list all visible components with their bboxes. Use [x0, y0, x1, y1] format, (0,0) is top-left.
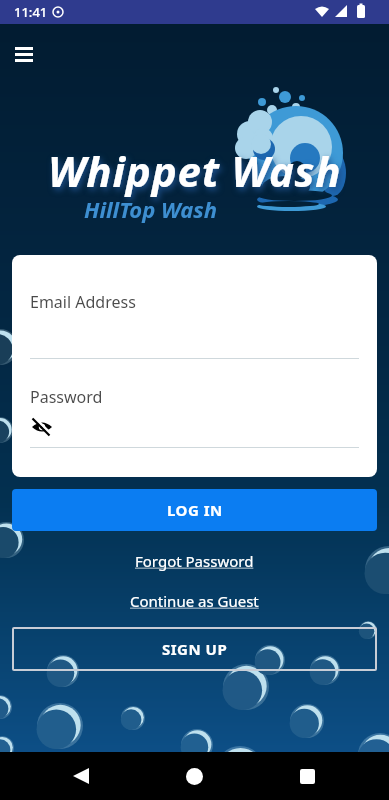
button[interactable]: LOG IN: [12, 489, 377, 531]
button[interactable]: Email Address: [30, 291, 359, 313]
button[interactable]: [287, 752, 327, 800]
staticText: Continue as Guest: [130, 591, 259, 611]
staticText: HillTop Wash: [84, 194, 217, 224]
staticText: SIGN UP: [162, 639, 228, 659]
button[interactable]: [30, 414, 56, 440]
button[interactable]: [6, 36, 42, 72]
staticText: 11:41: [14, 3, 48, 21]
button[interactable]: [61, 752, 101, 800]
button[interactable]: SIGN UP: [12, 627, 377, 671]
staticText: Whippet Wash: [48, 142, 342, 199]
button[interactable]: Forgot Password: [135, 551, 254, 571]
button[interactable]: Continue as Guest: [130, 591, 259, 611]
staticText: LOG IN: [167, 500, 223, 520]
staticText: Forgot Password: [135, 551, 254, 571]
button[interactable]: [174, 752, 214, 800]
staticText: Email Address: [30, 291, 136, 313]
staticText: Password: [30, 386, 103, 408]
button[interactable]: Password: [30, 386, 359, 408]
